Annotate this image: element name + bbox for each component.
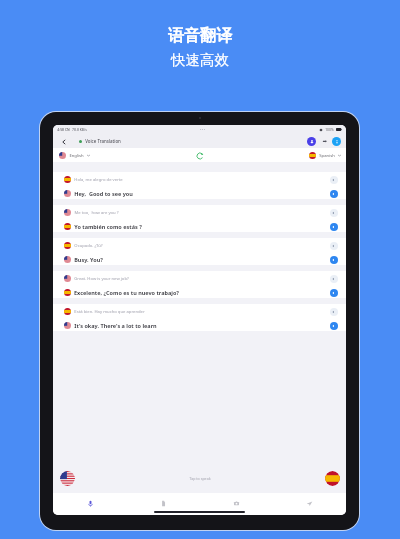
button[interactable]: Play translation bbox=[330, 223, 338, 231]
button[interactable]: Speak English bbox=[60, 471, 75, 486]
staticText: 4:58 CN bbox=[57, 127, 70, 132]
staticText: 快速高效 bbox=[171, 51, 229, 69]
staticText: Spanish bbox=[319, 153, 335, 159]
button[interactable]: Profile bbox=[307, 137, 316, 146]
button[interactable]: Swap languages bbox=[194, 150, 205, 161]
button[interactable]: Está bien. Hay mucho que aprender bbox=[53, 304, 346, 331]
button[interactable]: Documents bbox=[127, 493, 200, 515]
button[interactable]: Speak Spanish bbox=[325, 471, 340, 486]
button[interactable]: English bbox=[59, 152, 90, 159]
staticText: Ocupado. ¿Tú? bbox=[74, 243, 103, 249]
staticText: 78.8 KB/s bbox=[72, 127, 87, 132]
button[interactable]: Camera bbox=[200, 493, 273, 515]
button[interactable]: Play original bbox=[330, 209, 338, 217]
staticText: • • • bbox=[200, 128, 205, 132]
staticText: Excelente, ¿Como es tu nuevo trabajo? bbox=[74, 289, 179, 296]
staticText: Voice Translation bbox=[85, 138, 121, 144]
button[interactable]: Hola, me alegro de verte bbox=[53, 172, 346, 199]
button[interactable]: Play original bbox=[330, 176, 338, 184]
staticText: Está bien. Hay mucho que aprender bbox=[74, 309, 145, 315]
button[interactable]: Great. How is your new job? bbox=[53, 271, 346, 298]
button[interactable]: Ocupado. ¿Tú? bbox=[53, 238, 346, 265]
staticText: Busy. You? bbox=[74, 256, 103, 263]
button[interactable]: Play translation bbox=[330, 289, 338, 297]
button[interactable]: Back bbox=[58, 136, 69, 147]
button[interactable]: Microphone bbox=[53, 493, 127, 515]
staticText: Hey, Good to see you bbox=[74, 190, 133, 197]
staticText: 语音翻译 bbox=[168, 26, 232, 46]
staticText: Hola, me alegro de verte bbox=[74, 177, 123, 183]
staticText: Me too, how are you ? bbox=[74, 210, 119, 216]
staticText: 100% bbox=[325, 127, 334, 132]
button[interactable]: Share bbox=[273, 493, 346, 515]
button[interactable]: Play original bbox=[330, 275, 338, 283]
button[interactable]: More options bbox=[320, 137, 328, 145]
staticText: Great. How is your new job? bbox=[74, 276, 129, 282]
button[interactable]: Play translation bbox=[330, 256, 338, 264]
staticText: It's okay. There's a lot to learn bbox=[74, 322, 157, 329]
staticText: English bbox=[69, 153, 84, 159]
button[interactable]: Play original bbox=[330, 308, 338, 316]
button[interactable]: Play original bbox=[330, 242, 338, 250]
button[interactable]: Play translation bbox=[330, 322, 338, 330]
button[interactable]: Me too, how are you ? bbox=[53, 205, 346, 232]
staticText: Yo también como estás ? bbox=[74, 223, 142, 230]
button[interactable]: Play translation bbox=[330, 190, 338, 198]
button[interactable]: Spanish bbox=[309, 152, 341, 159]
button[interactable]: Information bbox=[332, 137, 341, 146]
staticText: Tap to speak bbox=[189, 476, 211, 481]
